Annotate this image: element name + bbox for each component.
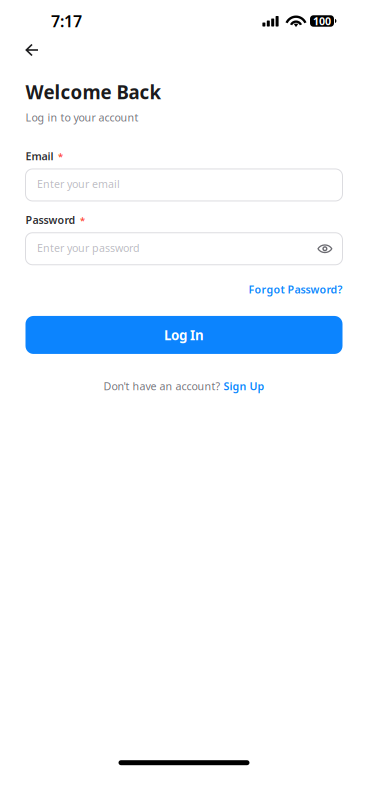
staticText: Sign Up <box>223 379 264 393</box>
staticText: Don't have an account? <box>103 379 220 393</box>
button[interactable]: Show password <box>310 234 332 264</box>
staticText: Email <box>25 149 53 163</box>
staticText: Enter your password <box>37 241 140 255</box>
staticText: Password <box>25 213 75 227</box>
button[interactable]: Back <box>25 37 55 63</box>
staticText: Welcome Back <box>25 79 161 104</box>
staticText: Enter your email <box>37 177 120 191</box>
staticText: Log In <box>164 326 204 344</box>
button[interactable]: Log In <box>25 316 342 354</box>
staticText: * <box>80 214 85 227</box>
staticText: Forgot Password? <box>248 282 342 296</box>
staticText: 7:17 <box>51 10 82 32</box>
button[interactable]: Forgot Password? <box>248 281 342 297</box>
staticText: * <box>58 151 63 163</box>
staticText: 100 <box>313 14 331 28</box>
staticText: Log in to your account <box>25 110 138 124</box>
button[interactable]: Sign Up <box>223 379 264 393</box>
